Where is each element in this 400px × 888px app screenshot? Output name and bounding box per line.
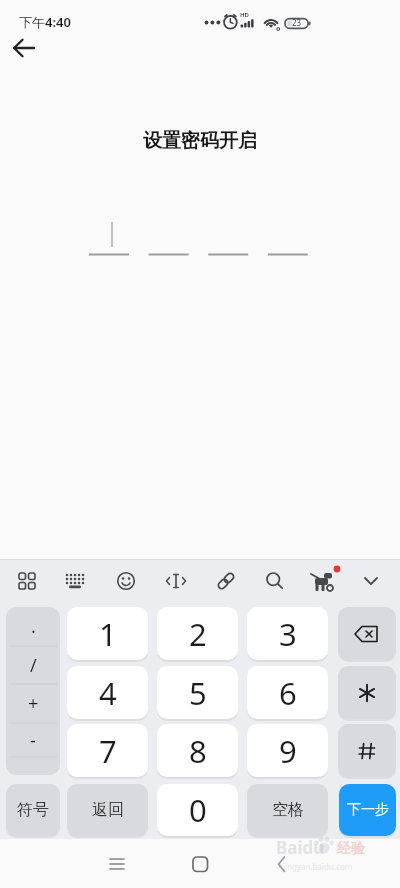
button[interactable]: +	[6, 684, 60, 723]
button[interactable]	[7, 561, 47, 601]
button[interactable]: 6	[247, 666, 328, 719]
button[interactable]	[338, 607, 396, 660]
staticText: 4	[99, 672, 117, 714]
button[interactable]: 返回	[67, 784, 148, 836]
staticText: 0	[189, 789, 207, 831]
button[interactable]	[8, 34, 40, 62]
button[interactable]: 符号	[6, 784, 60, 836]
staticText: 8	[189, 730, 207, 772]
staticText: 符号	[17, 800, 49, 820]
button[interactable]: 9	[247, 724, 328, 777]
button[interactable]: .	[6, 607, 60, 646]
staticText: 5	[189, 672, 207, 714]
staticText: +	[28, 691, 39, 716]
button[interactable]: 空格	[247, 784, 328, 836]
staticText: jingyan.baidu.com	[283, 861, 353, 872]
button[interactable]	[156, 561, 196, 601]
staticText: /	[30, 653, 37, 678]
staticText: 下午4:40	[19, 13, 71, 31]
button[interactable]: 0	[157, 784, 238, 836]
button[interactable]: 下一步	[339, 784, 396, 836]
button[interactable]: 8	[157, 724, 238, 777]
staticText: 9	[279, 730, 297, 772]
button[interactable]	[55, 561, 95, 601]
staticText: HD	[240, 11, 249, 19]
staticText: 下一步	[347, 801, 389, 819]
button[interactable]: /	[6, 646, 60, 684]
button[interactable]: 5	[157, 666, 238, 719]
staticText: .	[31, 614, 36, 639]
button[interactable]: 1	[67, 607, 148, 660]
button[interactable]: -	[6, 723, 60, 757]
staticText: Baidu	[276, 836, 325, 859]
button[interactable]	[106, 561, 146, 601]
button[interactable]	[338, 724, 396, 777]
button[interactable]: 3	[247, 607, 328, 660]
staticText: 2	[189, 613, 207, 655]
staticText: 1	[99, 613, 117, 655]
staticText: 空格	[272, 800, 304, 820]
button[interactable]: 2	[157, 607, 238, 660]
staticText: 3	[279, 613, 297, 655]
staticText: -	[30, 728, 36, 753]
staticText: 7	[99, 730, 117, 772]
staticText: 设置密码开启	[143, 129, 257, 153]
button[interactable]: 7	[67, 724, 148, 777]
button[interactable]: 4	[67, 666, 148, 719]
staticText: 6	[279, 672, 297, 714]
button[interactable]	[351, 561, 391, 601]
button[interactable]	[303, 561, 343, 601]
staticText: 返回	[92, 800, 124, 820]
button[interactable]	[338, 666, 396, 719]
staticText: 经验	[337, 840, 365, 858]
staticText: 23	[292, 17, 302, 28]
button[interactable]	[206, 561, 246, 601]
button[interactable]	[255, 561, 295, 601]
